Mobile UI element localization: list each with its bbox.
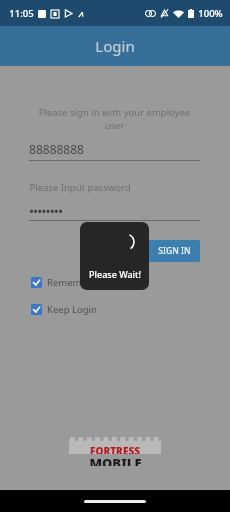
staticText: ••••••••	[29, 203, 63, 218]
staticText: Please Wait!	[89, 268, 141, 280]
staticText: 100%	[198, 7, 223, 20]
staticText: Please Input password	[29, 181, 131, 194]
staticText: Please sign in with your employee user	[29, 106, 200, 132]
button[interactable]: SIGN IN	[148, 240, 200, 262]
staticText: 11:05	[9, 7, 34, 20]
staticText: MOBILE	[89, 454, 142, 466]
button[interactable]: Keep Login	[29, 303, 101, 316]
staticText: Remember Me	[47, 276, 113, 289]
staticText: FORTRESS	[90, 444, 140, 454]
staticText: 88888888	[29, 141, 84, 157]
button[interactable]: Remember Me	[29, 276, 117, 289]
staticText: Keep Login	[47, 303, 97, 316]
staticText: Login	[95, 36, 135, 56]
staticText: SIGN IN	[158, 245, 191, 257]
